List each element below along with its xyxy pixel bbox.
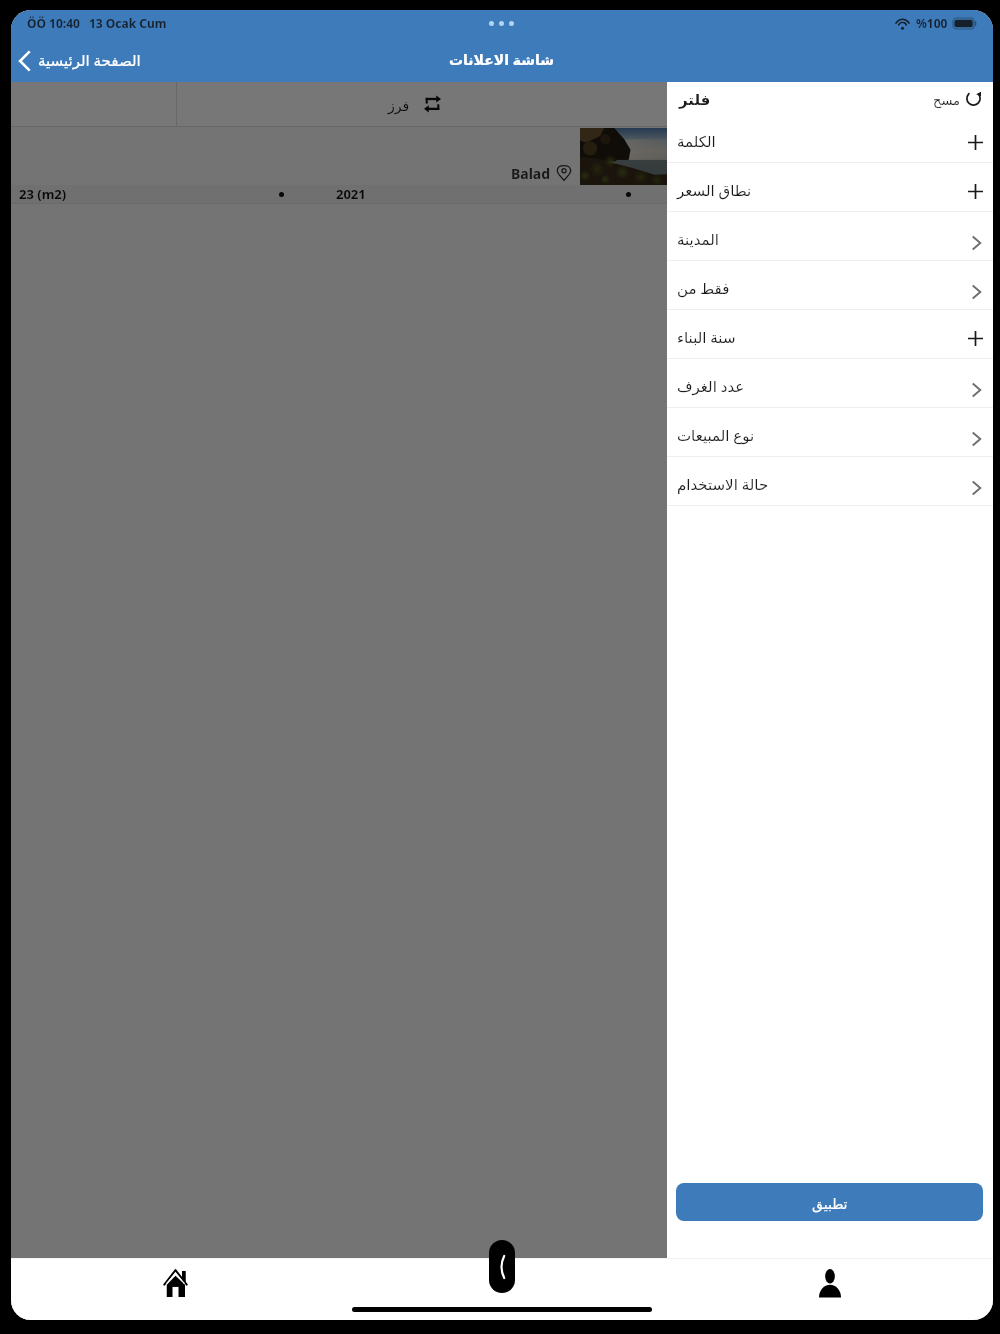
button[interactable]: فقط من (667, 261, 993, 309)
button[interactable]: الكلمة (667, 114, 993, 162)
staticText: Balad (511, 164, 551, 183)
staticText: مسح (933, 93, 960, 108)
staticText: ÖÖ 10:40 (27, 15, 80, 31)
staticText: تطبيق (812, 1196, 848, 1212)
button[interactable]: حالة الاستخدام (667, 457, 993, 505)
staticText: الصفحة الرئيسية (38, 50, 141, 70)
staticText: %100 (916, 15, 948, 31)
button[interactable]: المدينة (667, 212, 993, 260)
button[interactable]: نطاق السعر (667, 163, 993, 211)
staticText: عدد الغرف (677, 376, 745, 396)
button[interactable]: عدد الغرف (667, 359, 993, 407)
button[interactable]: سنة البناء (667, 310, 993, 358)
staticText: المدينة (677, 231, 720, 248)
staticText: حالة الاستخدام (677, 474, 769, 494)
button[interactable]: فرز (388, 82, 441, 126)
staticText: 13 Ocak Cum (89, 15, 167, 31)
button[interactable]: نوع المبيعات (667, 408, 993, 456)
staticText: فرز (388, 98, 410, 114)
staticText: الكلمة (677, 133, 716, 150)
staticText: 2021 (336, 185, 366, 203)
staticText: سنة البناء (677, 327, 736, 347)
button[interactable]: Home (137, 1258, 213, 1320)
staticText: فلتر (679, 91, 711, 108)
button[interactable]: تطبيق (676, 1183, 983, 1221)
button[interactable]: الصفحة الرئيسية (14, 40, 145, 82)
staticText: 23 (m2) (19, 185, 67, 203)
button[interactable]: مسح (933, 90, 982, 107)
button[interactable]: Drawer handle (489, 1240, 515, 1293)
staticText: نوع المبيعات (677, 425, 755, 445)
button[interactable]: Profile (792, 1258, 868, 1320)
staticText: فقط من (677, 278, 730, 298)
staticText: نطاق السعر (677, 180, 752, 200)
staticText: شاشة الاعلانات (449, 50, 554, 69)
